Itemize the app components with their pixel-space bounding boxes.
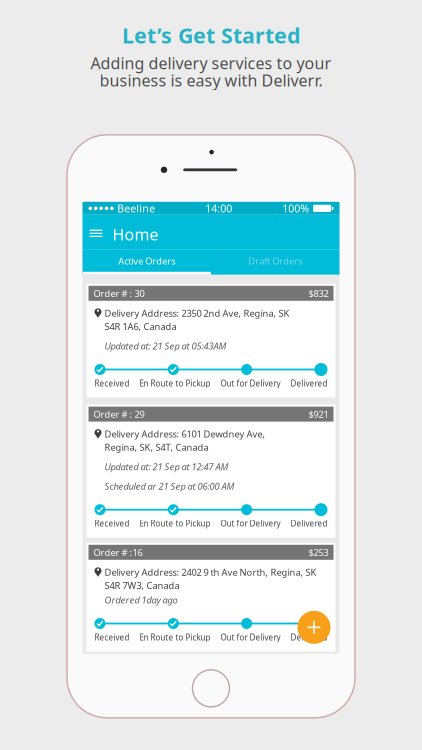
staticText: Adding delivery services to your [90, 52, 331, 73]
staticText: 100% [282, 201, 309, 215]
staticText: Delivered [290, 518, 327, 529]
staticText: Delivered [290, 378, 327, 389]
staticText: business is easy with Deliverr. [99, 70, 322, 91]
staticText: En Route to Pickup [139, 518, 210, 529]
button[interactable]: Menu [88, 223, 103, 241]
staticText: Delivery Address: 6101 Dewdney Ave, [104, 428, 265, 440]
staticText: Let’s Get Started [122, 21, 300, 49]
button[interactable]: Order # : 30 [86, 284, 335, 398]
staticText: Order # :16 [93, 546, 142, 558]
staticText: En Route to Pickup [139, 632, 210, 643]
staticText: Draft Orders [248, 255, 302, 267]
staticText: Received [94, 378, 129, 389]
staticText: S4R 1A6, Canada [104, 320, 176, 333]
staticText: Updated at: 21 Sep at 05:43AM [104, 340, 226, 352]
staticText: Received [94, 632, 129, 643]
staticText: S4R 7W3, Canada [104, 579, 179, 592]
staticText: Beeline [117, 201, 155, 215]
staticText: Updated at: 21 Sep at 12:47 AM [104, 460, 228, 473]
button[interactable]: Add order [297, 611, 330, 644]
staticText: Received [94, 518, 129, 529]
button[interactable]: Draft Orders [211, 250, 339, 272]
staticText: Order # : 29 [93, 408, 144, 420]
staticText: Order # : 30 [93, 287, 144, 299]
staticText: Scheduled ar 21 Sep at 06:00 AM [104, 480, 234, 492]
staticText: Active Orders [118, 255, 175, 267]
staticText: Home [112, 224, 158, 245]
staticText: $253 [308, 546, 328, 558]
staticText: Regina, SK, S4T, Canada [104, 441, 208, 453]
staticText: Ordered 1day ago [104, 594, 177, 606]
staticText: Delivered [290, 632, 327, 643]
button[interactable]: Order # :16 [86, 543, 335, 652]
button[interactable]: Order # : 29 [86, 405, 335, 538]
staticText: Out for Delivery [220, 378, 280, 389]
staticText: 14:00 [205, 201, 232, 215]
staticText: Out for Delivery [220, 632, 280, 643]
staticText: En Route to Pickup [139, 378, 210, 389]
button[interactable]: Active Orders [82, 250, 211, 272]
staticText: $921 [308, 408, 328, 420]
staticText: Delivery Address: 2350 2nd Ave, Regina, … [104, 307, 289, 319]
staticText: $832 [308, 287, 328, 299]
staticText: Delivery Address: 2402 9 th Ave North, R… [104, 566, 316, 578]
staticText: Out for Delivery [220, 518, 280, 529]
